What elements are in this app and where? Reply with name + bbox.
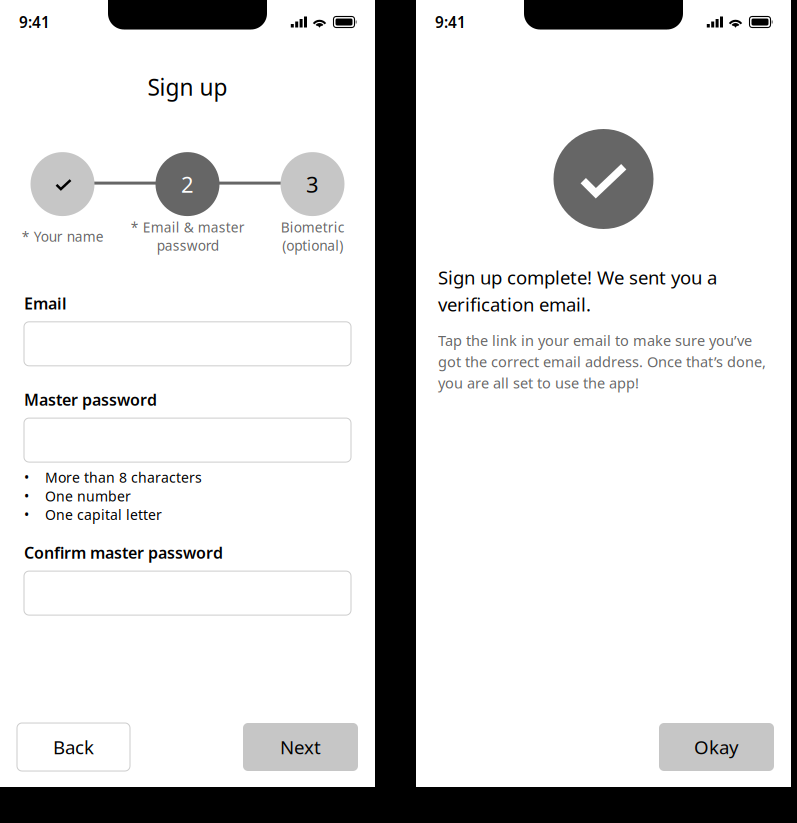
staticText: * Your name xyxy=(21,227,103,245)
staticText: 9:41 xyxy=(435,12,466,32)
staticText: Sign up xyxy=(147,72,227,102)
staticText: 3 xyxy=(306,169,319,199)
staticText: Email xyxy=(24,293,67,314)
staticText: Back xyxy=(53,735,94,759)
staticText: Tap the link in your email to make sure … xyxy=(438,331,766,393)
staticText: 2 xyxy=(181,169,194,199)
staticText: • xyxy=(24,468,29,487)
staticText: Next xyxy=(280,735,321,759)
staticText: Okay xyxy=(694,735,739,759)
staticText: Confirm master password xyxy=(24,542,223,563)
button[interactable]: Okay xyxy=(659,723,774,771)
staticText: Biometric (optional) xyxy=(280,218,344,255)
staticText: • xyxy=(24,487,29,505)
staticText: One number xyxy=(45,487,131,505)
button[interactable]: Back xyxy=(17,723,130,771)
staticText: 9:41 xyxy=(19,12,50,32)
button[interactable]: Next xyxy=(243,723,358,771)
staticText: One capital letter xyxy=(45,505,162,524)
staticText: More than 8 characters xyxy=(45,468,202,487)
staticText: Sign up complete! We sent you a verifica… xyxy=(438,265,717,317)
staticText: * Email & master password xyxy=(130,218,244,255)
staticText: • xyxy=(24,505,29,524)
staticText: Master password xyxy=(24,389,157,410)
